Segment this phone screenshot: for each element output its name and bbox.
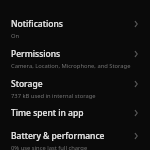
staticText: Storage: [11, 78, 43, 90]
staticText: Time spent in app: [11, 107, 84, 119]
button[interactable]: Notifications: [0, 15, 150, 45]
staticText: On: [11, 32, 20, 40]
staticText: 737 kB used in internal storage: [11, 92, 96, 100]
staticText: Notifications: [11, 18, 63, 30]
staticText: 0% use since last full charge: [11, 144, 88, 150]
staticText: Camera, Location, Microphone, and Storag…: [11, 62, 131, 70]
button[interactable]: Time spent in app: [0, 104, 150, 126]
button[interactable]: Battery & performance: [0, 126, 150, 150]
button[interactable]: Permissions: [0, 45, 150, 75]
button[interactable]: Storage: [0, 75, 150, 104]
staticText: Battery & performance: [11, 130, 105, 142]
staticText: Permissions: [11, 48, 61, 60]
